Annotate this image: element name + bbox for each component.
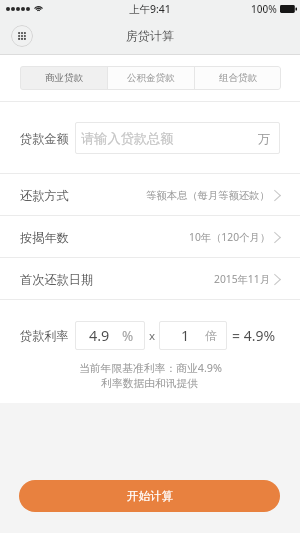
staticText: 10年（120个月） xyxy=(189,230,270,244)
staticText: 房贷计算 xyxy=(126,29,174,44)
button[interactable]: 4.9 xyxy=(75,321,145,350)
staticText: 4.9 xyxy=(89,326,110,346)
button[interactable]: 1 xyxy=(159,321,227,350)
button[interactable]: 开始计算 xyxy=(19,480,280,512)
button[interactable]: Apps menu xyxy=(11,25,33,47)
button[interactable]: 请输入贷款总额 xyxy=(75,122,280,154)
staticText: 请输入贷款总额 xyxy=(81,130,174,147)
staticText: 组合贷款 xyxy=(219,72,257,84)
staticText: 商业贷款 xyxy=(45,72,83,84)
staticText: 万 xyxy=(258,131,271,146)
staticText: 1 xyxy=(181,326,190,346)
button[interactable]: 商业贷款 xyxy=(20,66,107,90)
staticText: 当前年限基准利率：商业4.9% xyxy=(79,360,222,375)
staticText: x xyxy=(149,328,156,344)
staticText: 开始计算 xyxy=(127,489,173,503)
staticText: 贷款利率 xyxy=(20,328,69,343)
staticText: 等额本息（每月等额还款） xyxy=(146,189,270,202)
staticText: 首次还款日期 xyxy=(20,272,94,287)
button[interactable]: 公积金贷款 xyxy=(108,66,194,90)
button[interactable]: 还款方式 xyxy=(0,174,300,216)
staticText: 按揭年数 xyxy=(20,230,69,245)
staticText: 还款方式 xyxy=(20,188,69,203)
button[interactable]: 组合贷款 xyxy=(195,66,281,90)
staticText: 100% xyxy=(251,2,277,16)
staticText: 公积金贷款 xyxy=(127,72,175,84)
staticText: % xyxy=(122,327,134,345)
staticText: 2015年11月 xyxy=(214,272,270,286)
staticText: 利率数据由和讯提供 xyxy=(101,377,199,391)
button[interactable]: 首次还款日期 xyxy=(0,258,300,300)
button[interactable]: 按揭年数 xyxy=(0,216,300,258)
staticText: 上午9:41 xyxy=(129,2,171,16)
staticText: 倍 xyxy=(205,328,217,343)
staticText: 贷款金额 xyxy=(20,131,69,146)
staticText: = 4.9% xyxy=(232,326,276,345)
